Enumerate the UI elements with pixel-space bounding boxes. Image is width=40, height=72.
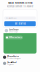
staticText: Jane Cooper (9, 29, 19, 31)
button[interactable]: Get Started (4, 21, 36, 26)
staticText: Get Started (14, 22, 25, 25)
staticText: Product designer (7, 57, 21, 59)
staticText: 2 hours ago (9, 31, 18, 33)
staticText: Accomplishment to Answer (6, 5, 33, 8)
button[interactable]: Amelia Reed (0, 60, 40, 66)
staticText: Engineer (7, 64, 14, 65)
staticText: 330k members (9, 36, 22, 38)
staticText: Amelia Reed (7, 61, 16, 63)
staticText: Email address (5, 17, 16, 19)
staticText: Social Network to Find (8, 1, 32, 4)
button[interactable]: Mason Carter (0, 54, 40, 60)
staticText: Mason Carter (7, 55, 19, 57)
